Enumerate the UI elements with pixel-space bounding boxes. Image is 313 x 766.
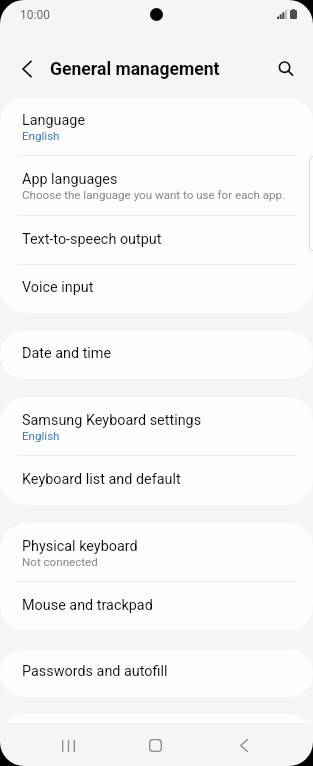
button[interactable]: Search [268,51,304,87]
staticText: Samsung Keyboard settings [22,412,202,429]
staticText: Not connected [22,555,98,569]
staticText: Language [22,112,86,129]
staticText: General management [50,59,220,80]
staticText: Text-to-speech output [22,231,162,248]
staticText: Passwords and autofill [22,663,168,680]
button[interactable]: Home [127,723,184,766]
button[interactable]: Physical keyboard [0,523,313,582]
staticText: Choose the language you want to use for … [22,188,286,202]
button[interactable]: Passwords and autofill [0,649,313,697]
button[interactable]: Mouse and trackpad [0,582,313,631]
staticText: Voice input [22,279,94,296]
staticText: English [22,129,60,143]
button[interactable]: Date and time [0,331,313,379]
button[interactable]: Keyboard list and default [0,456,313,505]
button[interactable]: Bluetooth [0,714,313,762]
staticText: Bluetooth [22,728,84,745]
staticText: Mouse and trackpad [22,597,153,614]
button[interactable]: Text-to-speech output [0,216,313,265]
staticText: App languages [22,171,118,188]
staticText: English [22,429,60,443]
button[interactable]: Samsung Keyboard settings [0,397,313,456]
button[interactable]: Voice input [0,265,313,313]
button[interactable]: App languages [0,156,313,216]
button[interactable]: Language [0,97,313,156]
staticText: Date and time [22,345,112,362]
button[interactable]: Recent apps [40,723,97,766]
button[interactable]: Back [215,723,272,766]
staticText: 10:00 [20,8,50,22]
staticText: Physical keyboard [22,538,138,555]
staticText: Keyboard list and default [22,471,181,488]
button[interactable]: Navigate up [9,51,45,87]
